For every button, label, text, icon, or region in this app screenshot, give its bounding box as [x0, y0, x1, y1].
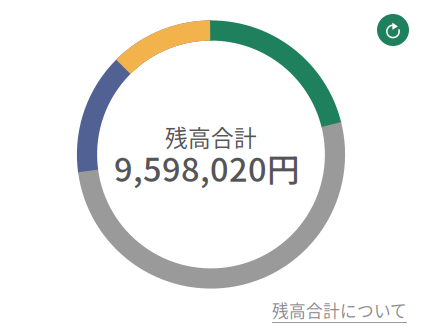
- staticText: 残高合計: [165, 120, 257, 153]
- button[interactable]: 残高合計について: [272, 298, 407, 323]
- staticText: 残高合計について: [272, 298, 407, 322]
- staticText: 9,598,020円: [114, 144, 300, 191]
- button[interactable]: Refresh balance: [377, 14, 409, 46]
